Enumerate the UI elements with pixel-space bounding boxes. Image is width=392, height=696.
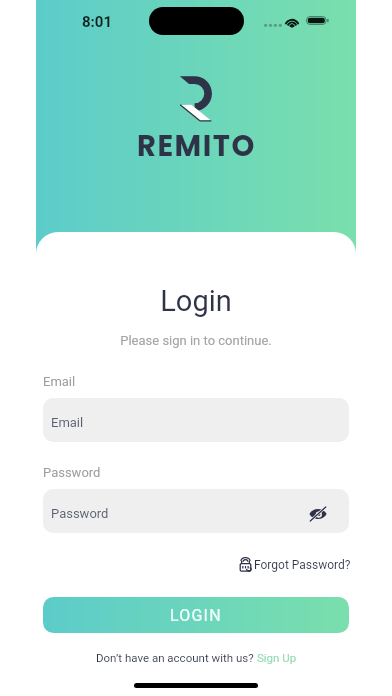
staticText: Login bbox=[43, 284, 349, 318]
button[interactable]: Forgot Password? bbox=[240, 557, 351, 572]
staticText: Email bbox=[43, 374, 76, 389]
staticText: REMITO bbox=[137, 126, 256, 167]
staticText: Password bbox=[43, 465, 101, 480]
button[interactable]: LOGIN bbox=[43, 597, 349, 633]
staticText: Password bbox=[51, 506, 109, 521]
staticText: 8:01 bbox=[82, 13, 113, 31]
staticText: LOGIN bbox=[170, 606, 222, 625]
staticText: Please sign in to continue. bbox=[43, 333, 349, 348]
staticText: Sign Up bbox=[257, 651, 297, 664]
staticText: Email bbox=[51, 415, 84, 430]
button[interactable]: Password bbox=[43, 489, 349, 533]
button[interactable]: Show password bbox=[305, 501, 331, 527]
staticText: Forgot Password? bbox=[254, 558, 351, 572]
staticText: Don’t have an account with us? bbox=[96, 651, 257, 664]
button[interactable]: Email bbox=[43, 398, 349, 442]
button[interactable]: Sign Up bbox=[257, 651, 297, 664]
